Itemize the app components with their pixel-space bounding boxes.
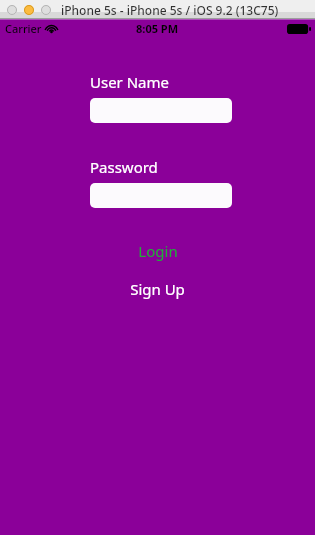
staticText: User Name (90, 72, 170, 92)
button[interactable]: User Name input field (90, 98, 232, 123)
staticText: Password (90, 157, 158, 177)
button[interactable]: Password input field (90, 183, 232, 208)
button[interactable]: Sign Up (118, 277, 197, 301)
staticText: Carrier (5, 21, 42, 36)
staticText: Sign Up (130, 279, 185, 299)
staticText: iPhone 5s - iPhone 5s / iOS 9.2 (13C75) (61, 2, 279, 18)
staticText: Login (138, 241, 178, 261)
staticText: 8:05 PM (136, 21, 179, 36)
button[interactable]: Login (126, 239, 190, 263)
